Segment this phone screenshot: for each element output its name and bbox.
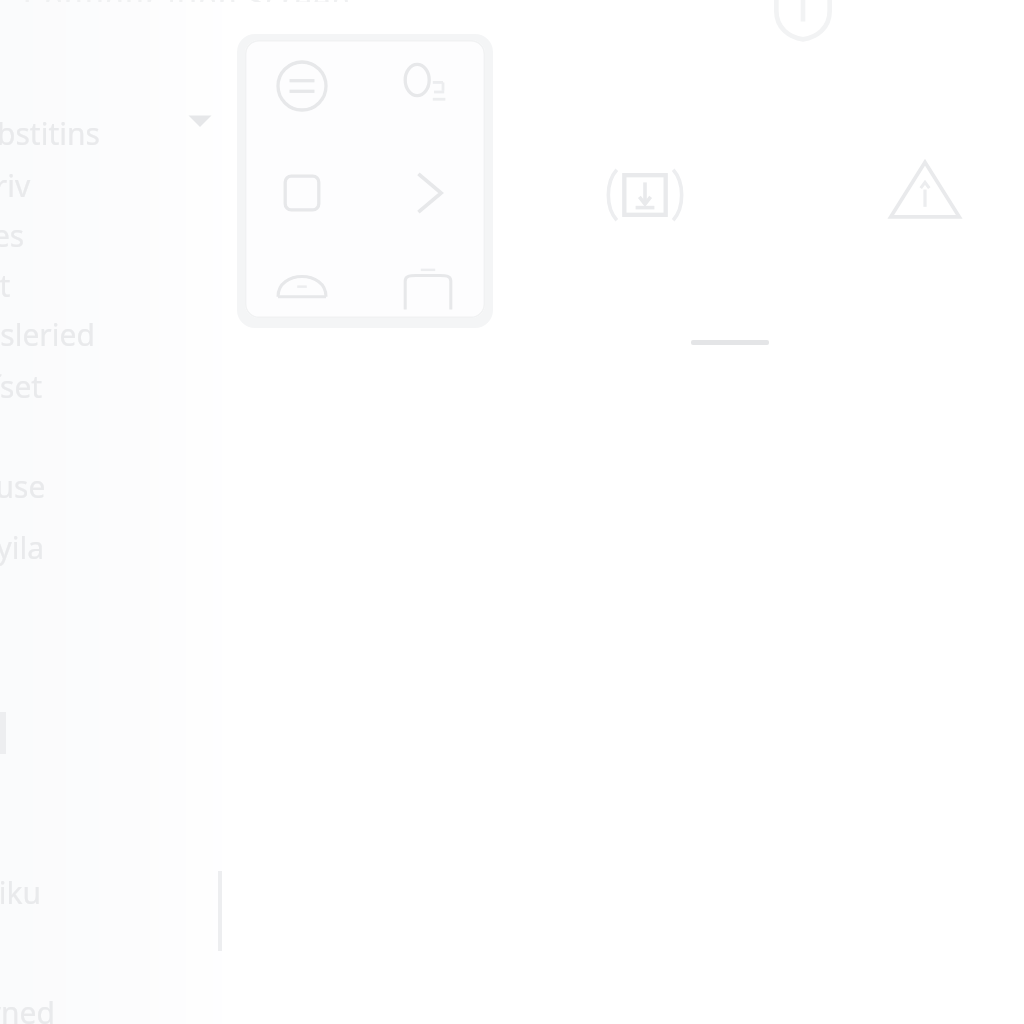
- staticText: Set: [0, 265, 11, 306]
- button[interactable]: Gauge: [272, 262, 332, 318]
- button[interactable]: Layila: [0, 527, 194, 571]
- button[interactable]: Reuse: [0, 466, 190, 510]
- button[interactable]: Option: [272, 163, 332, 223]
- staticText: Configuration Screen: [24, 0, 352, 2]
- button[interactable]: Import: [598, 150, 692, 240]
- staticText: Reuse: [0, 466, 46, 507]
- button[interactable]: Owned: [0, 992, 184, 1024]
- button[interactable]: Offset: [0, 366, 186, 410]
- staticText: Deriv: [0, 165, 31, 206]
- staticText: Rules: [0, 215, 25, 256]
- staticText: Offset: [0, 366, 43, 407]
- button[interactable]: Warning: [886, 155, 964, 227]
- button[interactable]: Option: [398, 56, 458, 116]
- staticText: Owned: [0, 992, 55, 1024]
- staticText: Utiku: [0, 872, 42, 913]
- staticText: Layila: [0, 527, 45, 568]
- button[interactable]: Expand dropdown: [182, 104, 218, 136]
- button[interactable]: Substitins: [0, 113, 192, 157]
- button[interactable]: [245, 40, 485, 318]
- button[interactable]: Option: [398, 163, 458, 223]
- staticText: Substitins: [0, 113, 100, 154]
- button[interactable]: Option: [272, 56, 332, 116]
- button[interactable]: Transleried: [0, 314, 168, 358]
- button[interactable]: Briefcase: [398, 262, 458, 318]
- button[interactable]: Utiku: [0, 872, 196, 916]
- staticText: Transleried: [0, 314, 95, 355]
- button[interactable]: Security: [772, 0, 834, 40]
